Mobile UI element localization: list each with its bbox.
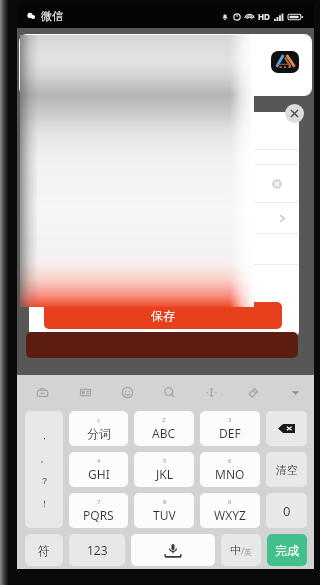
button[interactable]: 符 (25, 534, 63, 566)
button[interactable]: 中 (221, 534, 261, 566)
button[interactable]: 4 (69, 452, 128, 487)
staticText: 2 (162, 416, 166, 424)
staticText: 保存 (151, 308, 175, 323)
button[interactable]: 2 (134, 411, 194, 446)
staticText: 4 (97, 457, 101, 465)
staticText: 1 (97, 417, 101, 425)
button[interactable]: Voice input (131, 534, 215, 566)
staticText: WXYZ (214, 507, 246, 523)
staticText: 0 (283, 502, 291, 520)
staticText: MNO (215, 466, 245, 482)
button[interactable]: 1 (69, 411, 128, 446)
staticText: 5 (163, 457, 167, 465)
button[interactable]: Search (158, 381, 180, 403)
button[interactable]: 完成 (267, 534, 307, 566)
button[interactable]: 9 (200, 493, 260, 528)
button[interactable]: 保存 (44, 302, 282, 329)
staticText: 分词 (87, 426, 111, 441)
button[interactable]: 7 (69, 493, 128, 528)
staticText: ？ (40, 475, 49, 486)
staticText: 8 (163, 498, 167, 506)
staticText: GHI (88, 466, 110, 482)
button[interactable]: Emoji (116, 381, 138, 403)
staticText: ABC (152, 425, 176, 441)
button[interactable]: 8 (134, 493, 194, 528)
staticText: PQRS (83, 507, 114, 523)
staticText: 3 (228, 416, 232, 424)
staticText: 7 (97, 498, 101, 506)
button[interactable]: ， (25, 411, 63, 528)
staticText: 6 (228, 457, 232, 465)
staticText: 微信 (41, 9, 63, 23)
button[interactable]: 0 (266, 493, 307, 528)
button[interactable]: Close (285, 104, 304, 123)
staticText: 。 (40, 453, 49, 464)
button[interactable]: 123 (69, 534, 125, 566)
staticText: JKL (156, 466, 173, 482)
button[interactable]: Toolbox (31, 381, 53, 403)
staticText: ， (40, 430, 49, 441)
button[interactable]: Clipboard (74, 381, 96, 403)
button[interactable] (19, 34, 312, 96)
button[interactable]: Clear (29, 165, 299, 202)
staticText: TUV (153, 507, 176, 523)
staticText: 英 (244, 547, 252, 557)
staticText: 符 (38, 543, 50, 558)
staticText: DEF (219, 425, 241, 441)
staticText: / (241, 546, 244, 557)
button[interactable]: Backspace (266, 411, 307, 446)
button[interactable]: 6 (200, 452, 260, 487)
button[interactable]: Clear (272, 179, 282, 189)
button[interactable]: Cursor (200, 381, 222, 403)
staticText: 清空 (276, 463, 298, 477)
staticText: 123 (87, 542, 108, 558)
button[interactable]: Theme (242, 381, 264, 403)
button[interactable] (29, 203, 299, 233)
button[interactable]: 清空 (266, 452, 307, 487)
staticText: 完成 (275, 543, 299, 558)
button[interactable]: 3 (200, 411, 260, 446)
staticText: ！ (40, 498, 49, 509)
staticText: 中 (230, 543, 241, 557)
staticText: HD (258, 11, 270, 22)
button[interactable]: 5 (134, 452, 194, 487)
button[interactable]: Collapse (284, 381, 306, 403)
staticText: 9 (228, 498, 232, 506)
